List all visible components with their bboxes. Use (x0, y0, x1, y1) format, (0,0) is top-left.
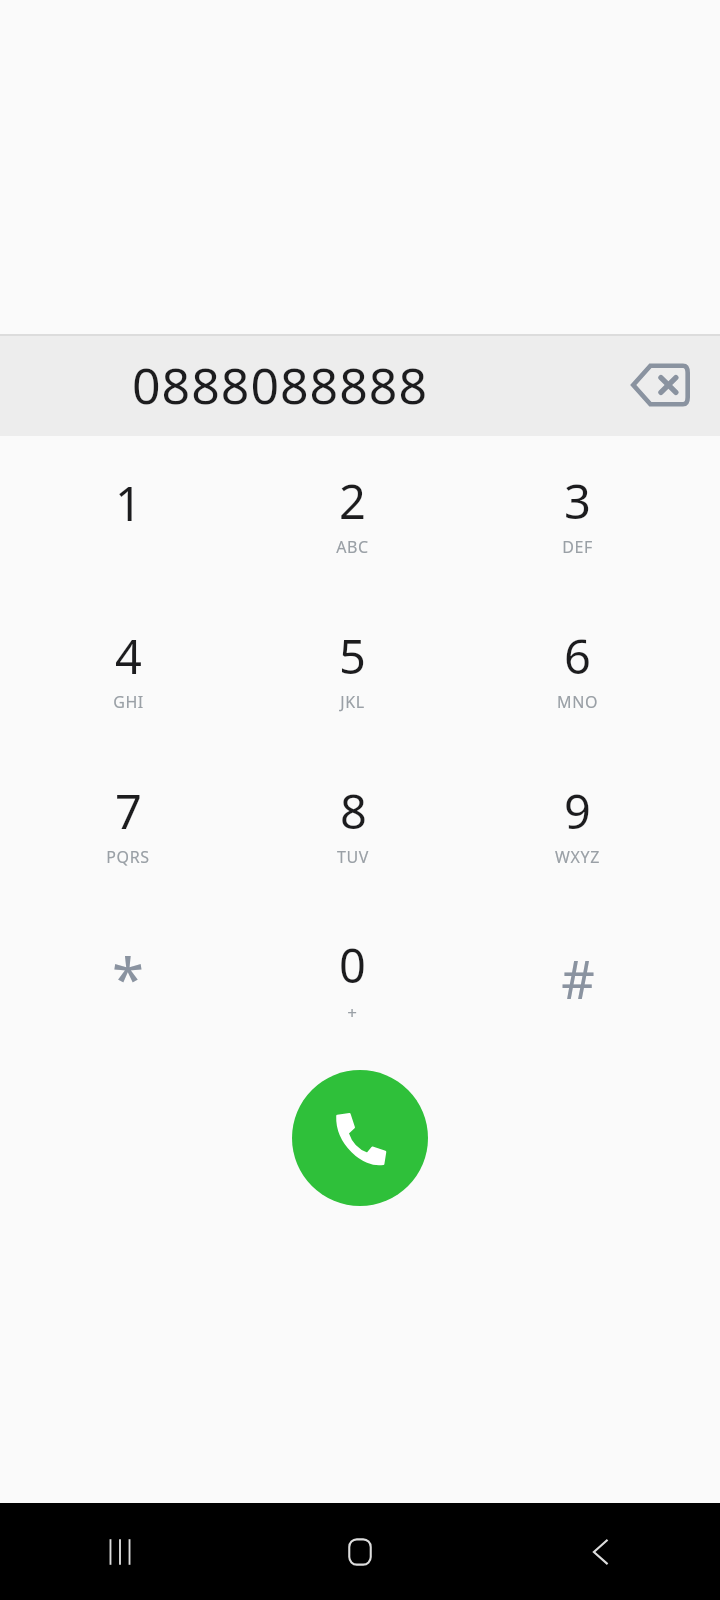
staticText: JKL (340, 691, 365, 713)
staticText: 5 (339, 624, 366, 688)
button[interactable]: 0 (240, 901, 465, 1056)
staticText: 0888088888 (132, 351, 428, 419)
staticText: WXYZ (555, 846, 600, 868)
staticText: 6 (564, 624, 591, 688)
staticText: ABC (336, 536, 369, 558)
staticText: 1 (115, 471, 142, 535)
button[interactable]: 8 (240, 746, 465, 901)
button[interactable]: 6 (465, 591, 690, 746)
staticText: 4 (115, 624, 142, 688)
staticText: 2 (339, 469, 366, 533)
button[interactable]: Call (292, 1070, 428, 1206)
button[interactable]: 9 (465, 746, 690, 901)
button[interactable]: 7 (16, 746, 240, 901)
staticText: 0 (339, 933, 366, 997)
button[interactable]: Back (480, 1503, 720, 1600)
staticText: 3 (564, 469, 591, 533)
staticText: GHI (113, 691, 144, 713)
staticText: DEF (562, 536, 593, 558)
staticText: # (561, 943, 595, 1014)
staticText: 9 (564, 779, 591, 843)
button[interactable]: 3 (465, 436, 690, 591)
button[interactable]: * (16, 901, 240, 1056)
button[interactable]: Recent apps (0, 1503, 240, 1600)
staticText: 7 (115, 779, 142, 843)
button[interactable]: 2 (240, 436, 465, 591)
button[interactable]: 5 (240, 591, 465, 746)
button[interactable]: 4 (16, 591, 240, 746)
staticText: + (347, 1001, 358, 1024)
button[interactable]: # (465, 901, 690, 1056)
button[interactable]: Home (240, 1503, 480, 1600)
staticText: TUV (337, 846, 369, 868)
staticText: MNO (557, 691, 598, 713)
button[interactable]: 1 (16, 436, 240, 591)
staticText: PQRS (106, 846, 150, 868)
button[interactable]: Backspace (612, 337, 708, 433)
staticText: * (112, 939, 144, 1018)
staticText: 8 (340, 779, 367, 843)
